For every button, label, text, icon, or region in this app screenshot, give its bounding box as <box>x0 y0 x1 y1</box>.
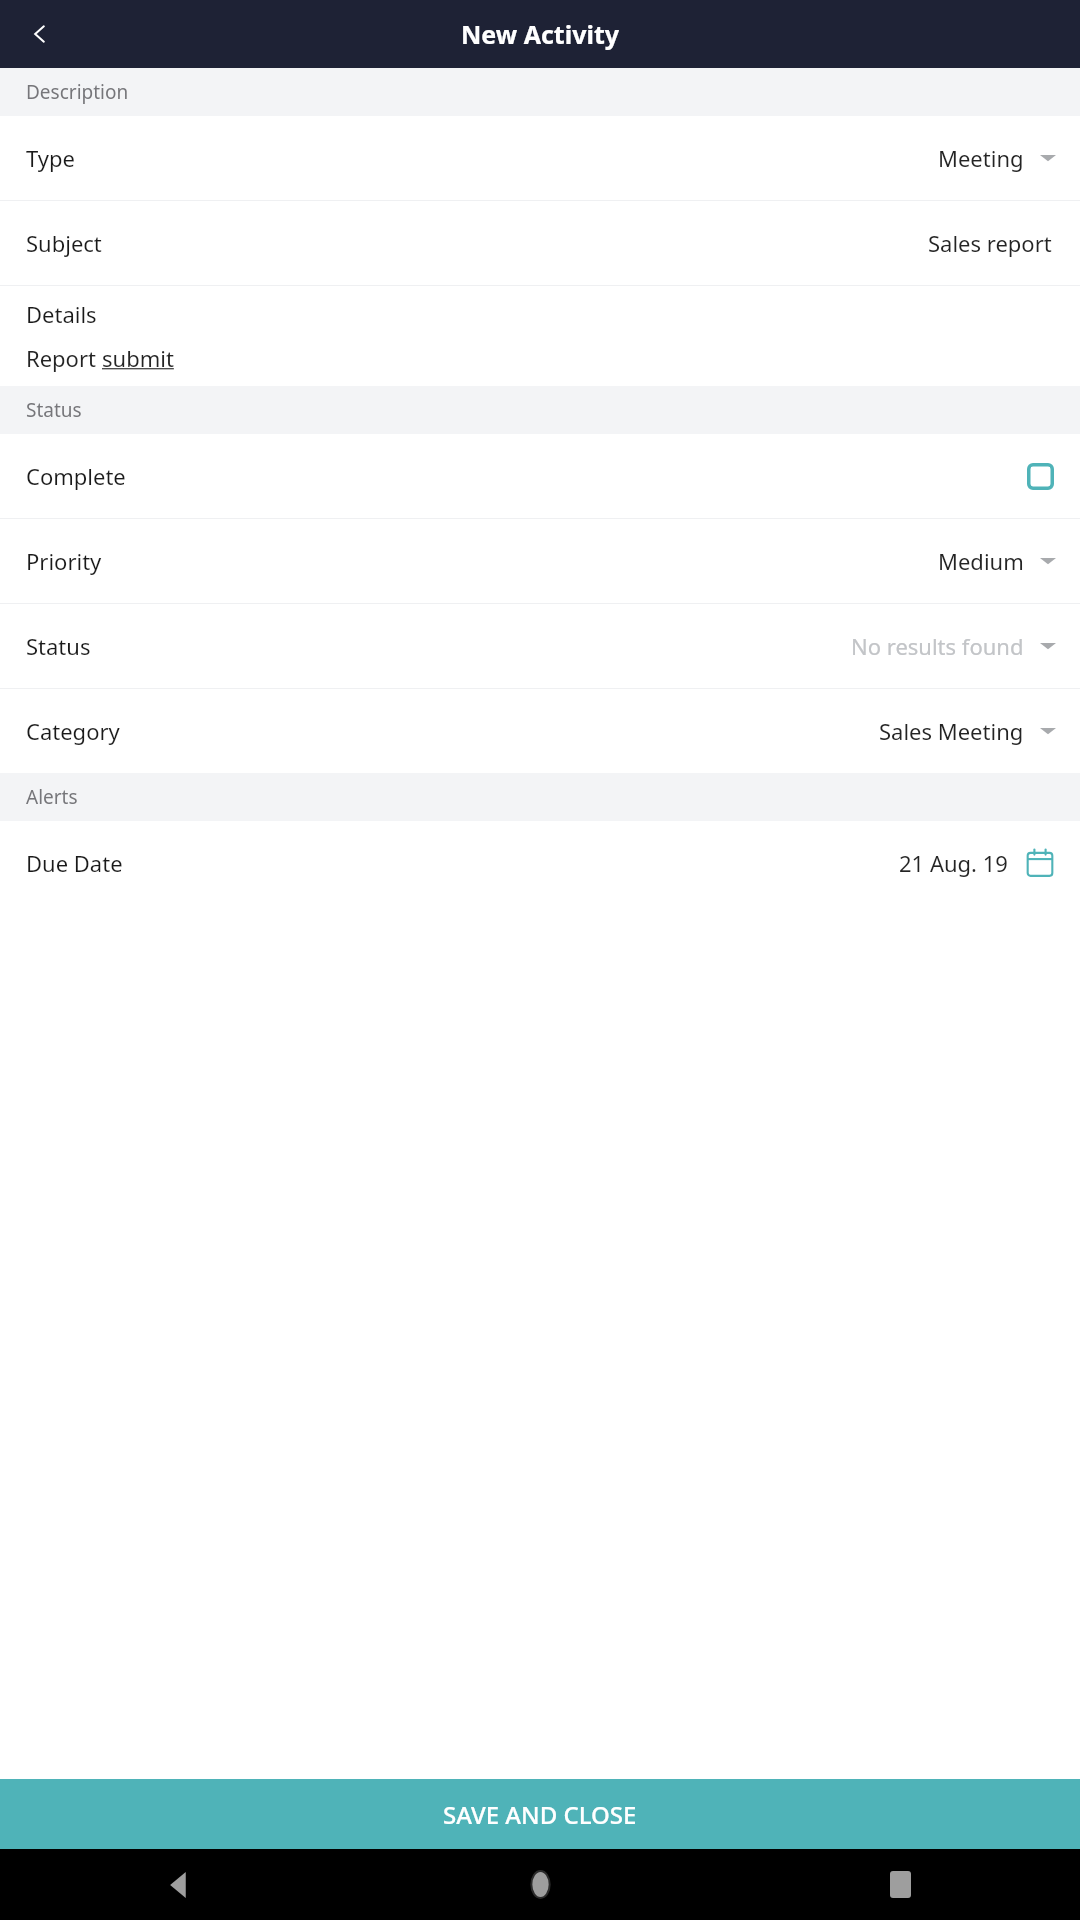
staticText: Sales report <box>928 228 1052 258</box>
button[interactable]: Category <box>0 689 1080 773</box>
button[interactable]: Details <box>0 286 1080 386</box>
staticText: Report <box>26 343 102 373</box>
button[interactable]: Recent apps <box>720 1849 1080 1920</box>
staticText: Subject <box>26 228 102 258</box>
button[interactable]: Status <box>0 604 1080 688</box>
button[interactable]: Priority <box>0 519 1080 603</box>
button[interactable]: SAVE AND CLOSE <box>0 1779 1080 1849</box>
staticText: Medium <box>938 546 1024 576</box>
button[interactable]: Subject <box>0 201 1080 285</box>
staticText: Meeting <box>938 143 1024 173</box>
staticText: Category <box>26 716 120 746</box>
staticText: No results found <box>851 631 1024 661</box>
staticText: Alerts <box>26 784 78 810</box>
staticText: Type <box>26 143 75 173</box>
button[interactable]: Due Date <box>0 821 1080 905</box>
staticText: Status <box>26 631 91 661</box>
staticText: submit <box>102 343 174 373</box>
staticText: 21 Aug. 19 <box>899 848 1008 878</box>
button[interactable]: Type <box>0 116 1080 200</box>
staticText: Due Date <box>26 848 123 878</box>
button[interactable]: Back <box>14 8 66 60</box>
staticText: Complete <box>26 461 126 491</box>
button[interactable]: Back <box>0 1849 360 1920</box>
staticText: Sales Meeting <box>879 716 1024 746</box>
staticText: Priority <box>26 546 102 576</box>
staticText: Details <box>26 299 97 329</box>
button[interactable]: Complete <box>0 434 1080 518</box>
button[interactable]: Home <box>360 1849 720 1920</box>
staticText: New Activity <box>461 17 620 51</box>
button[interactable]: Complete checkbox <box>1027 463 1054 490</box>
staticText: SAVE AND CLOSE <box>443 1798 637 1831</box>
staticText: Description <box>26 79 129 105</box>
staticText: Status <box>26 397 82 423</box>
button[interactable]: Pick date <box>1026 849 1054 877</box>
